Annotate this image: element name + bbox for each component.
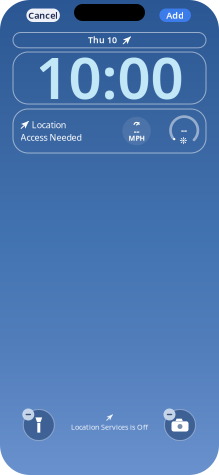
button[interactable]: Remove Flashlight [18, 404, 60, 446]
staticText: Add [166, 9, 184, 21]
button[interactable]: Remove Camera [159, 404, 201, 446]
staticText: Thu 10 [88, 34, 117, 46]
staticText: -- [181, 123, 187, 136]
staticText: MPH [129, 133, 145, 143]
button[interactable]: Add [159, 8, 191, 22]
staticText: Location Services is Off [71, 422, 148, 432]
button[interactable]: Cancel [26, 8, 60, 22]
staticText: Cancel [28, 9, 58, 21]
staticText: Location [32, 119, 67, 131]
staticText: 10:00 [35, 37, 183, 89]
staticText: -- [134, 124, 140, 137]
staticText: Access Needed [20, 131, 81, 143]
